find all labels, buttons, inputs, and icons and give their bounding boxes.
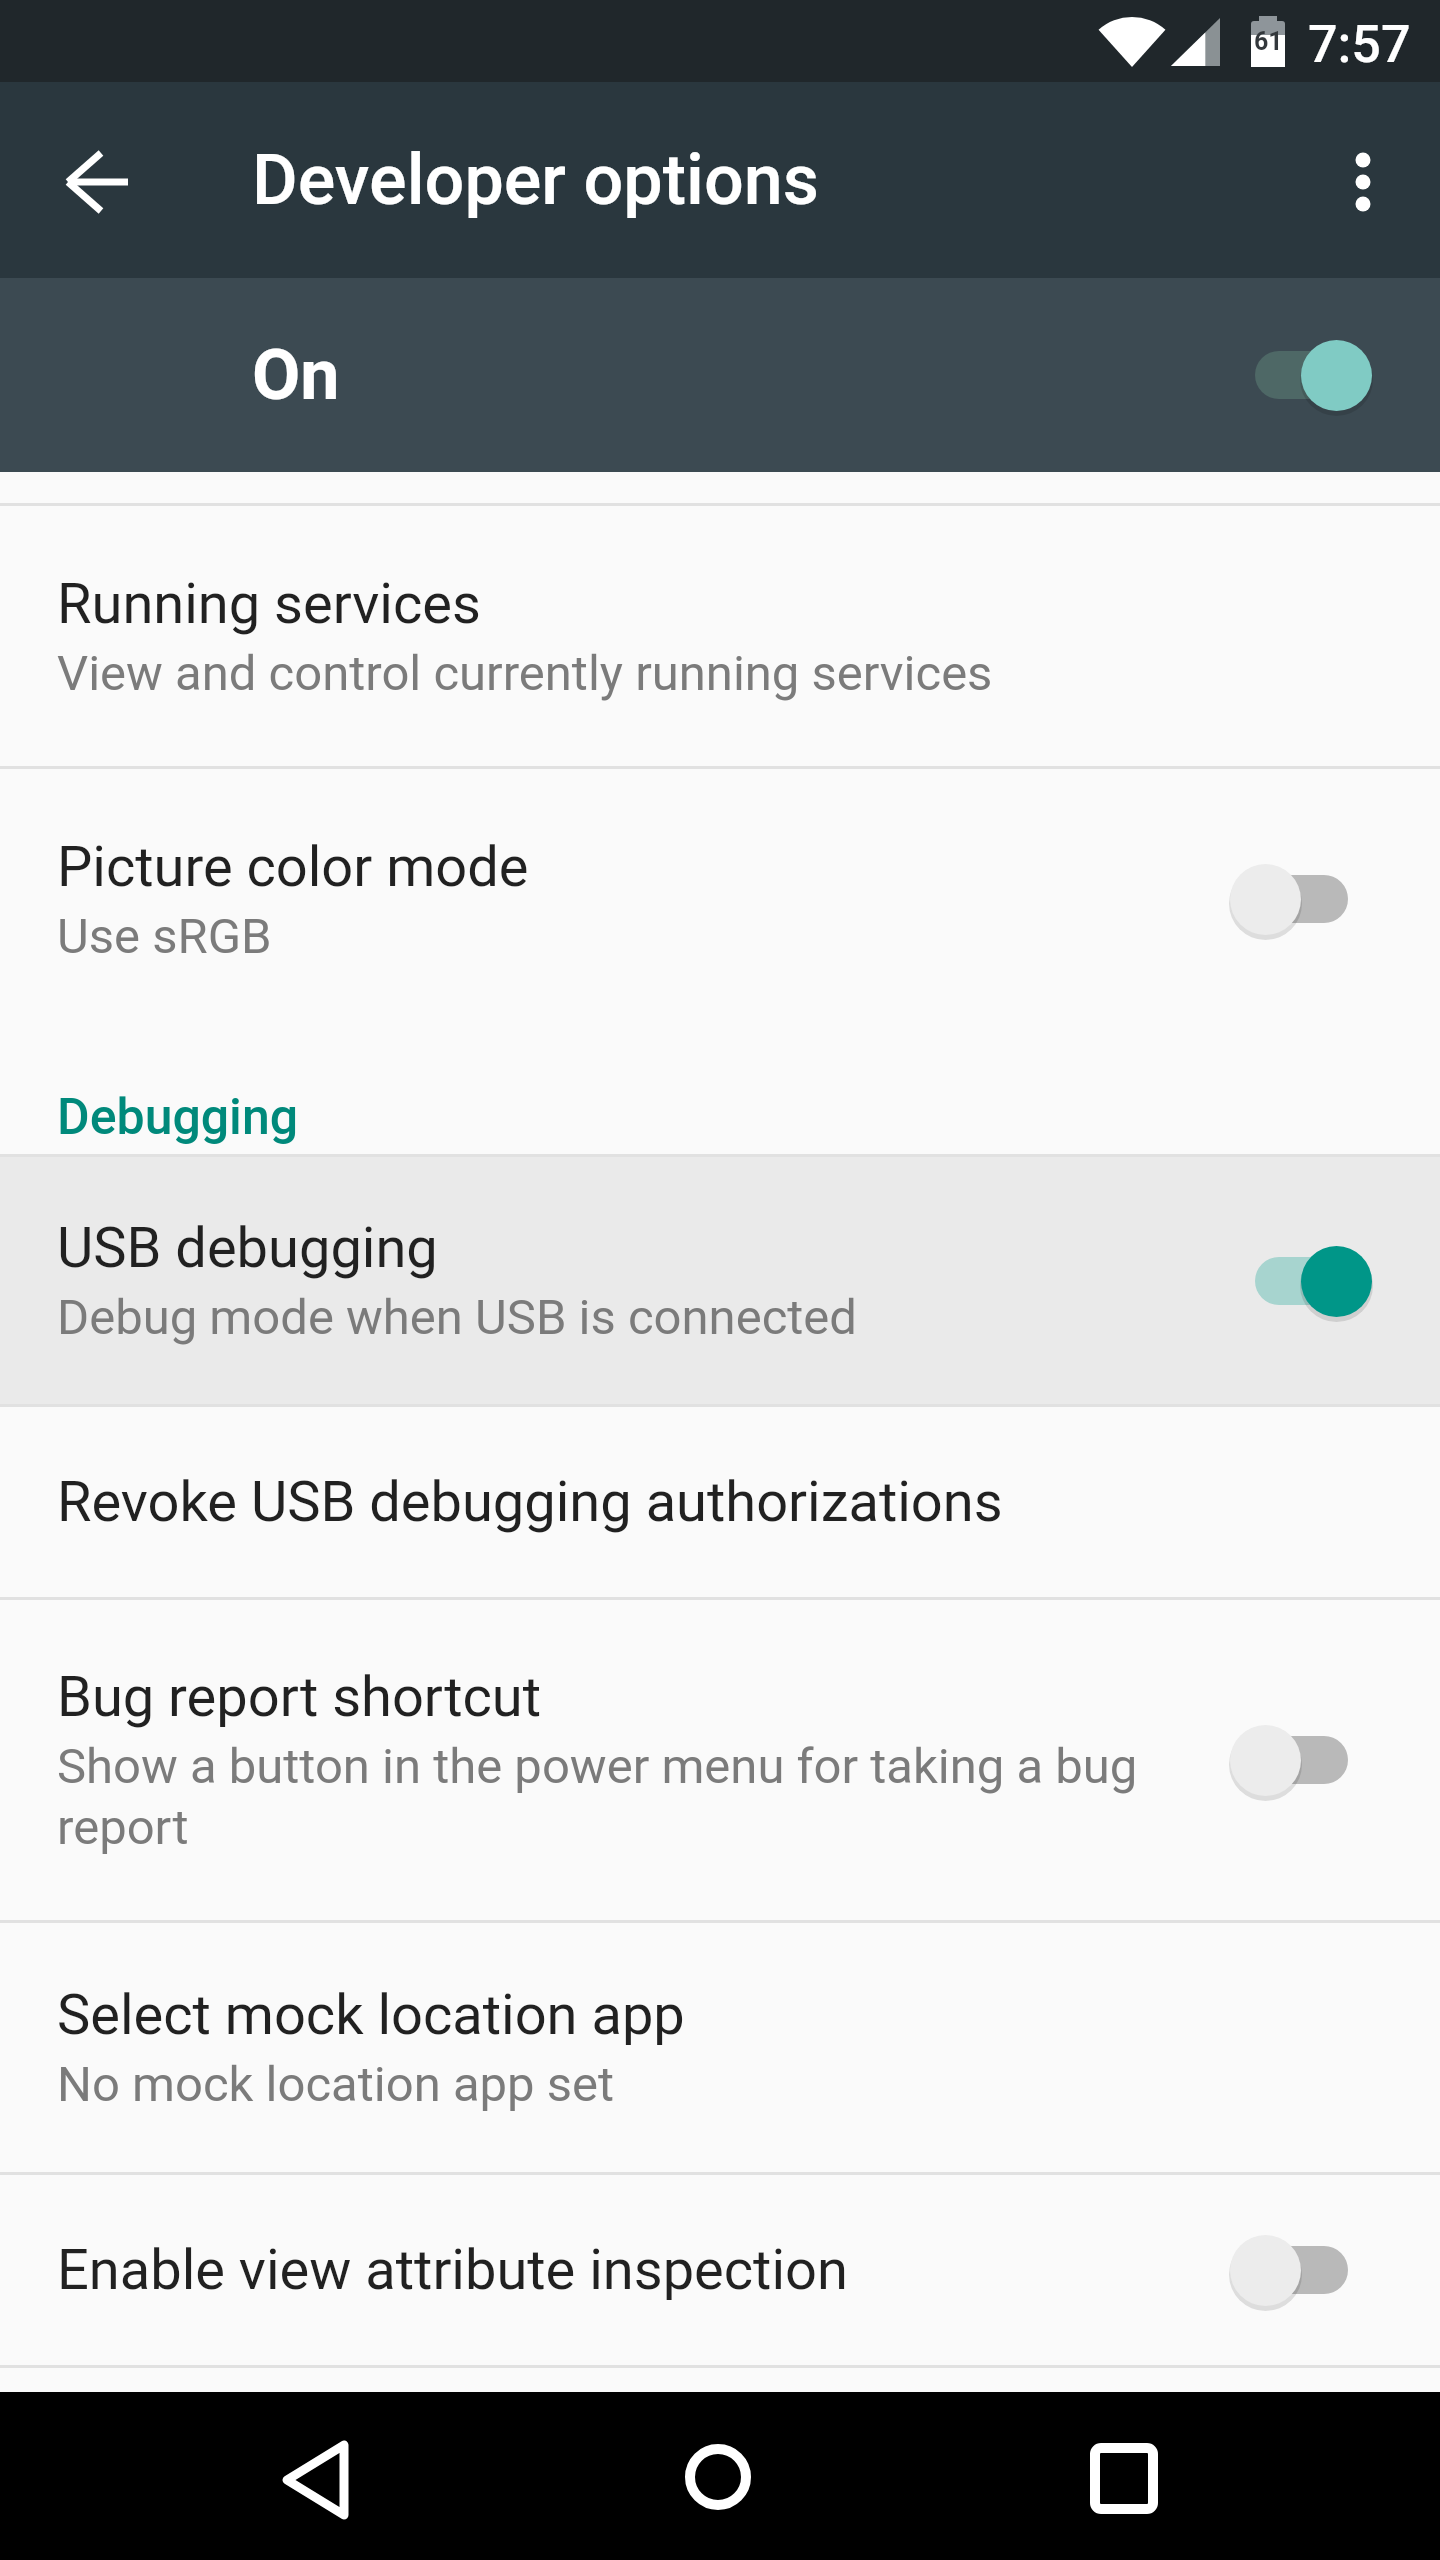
staticText: Enable view attribute inspection [57, 2237, 848, 2303]
staticText: Bug report shortcut [57, 1664, 542, 1730]
button[interactable] [1230, 1245, 1372, 1317]
button[interactable]: Revoke USB debugging authorizations [0, 1407, 1440, 1597]
staticText: USB debugging [57, 1215, 438, 1281]
staticText: Running services [57, 571, 481, 637]
button[interactable]: Select mock location app [0, 1923, 1440, 2172]
button[interactable] [265, 2426, 365, 2526]
staticText: Picture color mode [57, 834, 529, 900]
button[interactable] [1230, 1724, 1372, 1796]
button[interactable]: Bug report shortcut [0, 1600, 1440, 1920]
button[interactable] [1230, 863, 1372, 935]
button[interactable] [668, 2426, 768, 2526]
staticText: View and control currently running servi… [57, 645, 993, 702]
staticText: Select mock location app [57, 1982, 685, 2048]
staticText: Use sRGB [57, 908, 272, 965]
staticText: Debugging [57, 1088, 299, 1147]
button[interactable] [1327, 146, 1399, 218]
staticText: On [252, 334, 340, 416]
staticText: Developer options [252, 139, 819, 221]
staticText: No mock location app set [57, 2056, 615, 2113]
staticText: 7:57 [1308, 14, 1411, 75]
button[interactable] [1074, 2426, 1174, 2526]
staticText: Debug mode when USB is connected [57, 1289, 857, 1346]
button[interactable]: Running services [0, 506, 1440, 766]
button[interactable]: Enable view attribute inspection [0, 2175, 1440, 2365]
staticText: 61 [1254, 27, 1283, 56]
button[interactable]: Picture color mode [0, 769, 1440, 1029]
button[interactable]: On [0, 278, 1440, 472]
staticText: Show a button in the power menu for taki… [57, 1738, 1138, 1856]
button[interactable] [1230, 339, 1372, 411]
button[interactable] [1230, 2234, 1372, 2306]
button[interactable] [56, 140, 140, 224]
button[interactable]: USB debugging [0, 1157, 1440, 1404]
staticText: Revoke USB debugging authorizations [57, 1469, 1003, 1535]
